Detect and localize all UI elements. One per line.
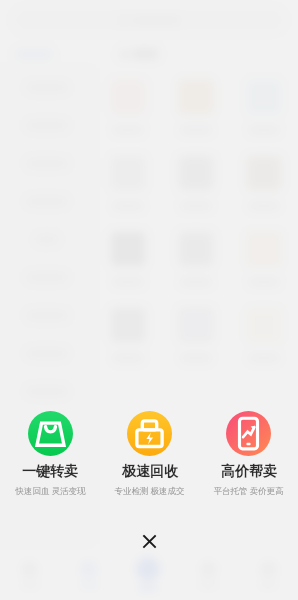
staticText: 快速回血 灵活变现 [15, 485, 86, 497]
button[interactable]: 高价帮卖 [199, 411, 298, 497]
staticText: 极速回收 [122, 463, 178, 481]
button[interactable]: 关闭 [134, 526, 164, 556]
staticText: 平台托管 卖价更高 [213, 485, 284, 497]
staticText: 专业检测 极速成交 [114, 485, 185, 497]
staticText: 高价帮卖 [221, 463, 277, 481]
button[interactable]: 极速回收 [100, 411, 199, 497]
button[interactable]: 一键转卖 [0, 411, 100, 497]
staticText: 一键转卖 [22, 463, 78, 481]
